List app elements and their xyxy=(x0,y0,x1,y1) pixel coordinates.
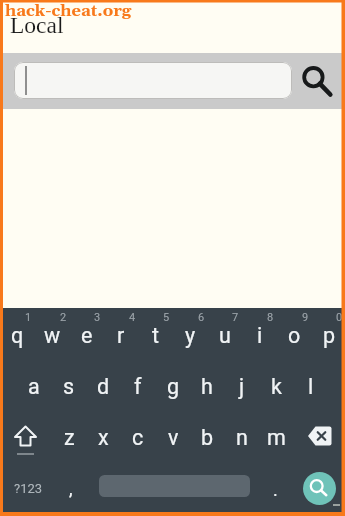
button[interactable]: q xyxy=(0,310,34,360)
staticText: 3 xyxy=(94,311,101,324)
button[interactable]: . xyxy=(258,464,292,514)
staticText: 6 xyxy=(198,311,205,324)
staticText: 4 xyxy=(129,311,136,324)
button[interactable] xyxy=(14,62,292,99)
button[interactable] xyxy=(3,411,48,461)
button[interactable] xyxy=(297,411,343,461)
staticText: 5 xyxy=(163,311,170,324)
button[interactable]: k xyxy=(259,361,293,411)
staticText: . xyxy=(273,479,278,500)
button[interactable]: t xyxy=(139,310,173,360)
staticText: f xyxy=(134,374,142,399)
staticText: ?123 xyxy=(14,481,43,496)
staticText: m xyxy=(267,425,286,450)
staticText: r xyxy=(117,323,125,348)
button[interactable]: j xyxy=(225,361,259,411)
button[interactable]: n xyxy=(225,412,259,462)
staticText: j xyxy=(239,374,245,399)
button[interactable]: l xyxy=(294,361,328,411)
staticText: , xyxy=(69,478,73,499)
button[interactable]: m xyxy=(259,412,293,462)
staticText: i xyxy=(257,323,263,348)
staticText: l xyxy=(308,374,314,399)
staticText: o xyxy=(288,323,301,348)
button[interactable] xyxy=(303,472,336,505)
staticText: 2 xyxy=(60,311,67,324)
staticText: a xyxy=(28,374,40,399)
button[interactable]: u xyxy=(208,310,242,360)
staticText: Local xyxy=(10,12,64,38)
staticText: g xyxy=(167,374,180,399)
button[interactable]: f xyxy=(121,361,155,411)
button[interactable]: v xyxy=(156,412,190,462)
staticText: d xyxy=(97,374,110,399)
button[interactable]: y xyxy=(173,310,207,360)
button[interactable]: o xyxy=(277,310,311,360)
staticText: 7 xyxy=(232,311,239,324)
button[interactable]: i xyxy=(243,310,277,360)
button[interactable]: x xyxy=(86,412,120,462)
staticText: z xyxy=(64,425,75,450)
staticText: 0 xyxy=(336,311,343,324)
button[interactable]: d xyxy=(86,361,120,411)
staticText: c xyxy=(132,425,144,450)
button[interactable]: w xyxy=(35,310,69,360)
staticText: y xyxy=(185,323,196,348)
button[interactable]: a xyxy=(17,361,51,411)
button[interactable]: p xyxy=(312,310,345,360)
button[interactable]: , xyxy=(54,463,88,513)
staticText: h xyxy=(201,374,213,399)
button[interactable]: z xyxy=(52,412,86,462)
staticText: v xyxy=(168,425,179,450)
staticText: b xyxy=(201,425,214,450)
button[interactable]: r xyxy=(104,310,138,360)
staticText: e xyxy=(81,323,93,348)
staticText: 8 xyxy=(267,311,274,324)
staticText: p xyxy=(323,323,336,348)
button[interactable]: c xyxy=(121,412,155,462)
staticText: u xyxy=(219,323,231,348)
staticText: n xyxy=(236,425,248,450)
button[interactable]: g xyxy=(156,361,190,411)
staticText: k xyxy=(271,374,282,399)
staticText: 1 xyxy=(25,311,32,324)
button[interactable]: s xyxy=(52,361,86,411)
staticText: hack-cheat.org xyxy=(5,1,132,22)
button[interactable]: ?123 xyxy=(6,463,50,513)
button[interactable] xyxy=(297,58,337,98)
staticText: x xyxy=(98,425,109,450)
button[interactable]: h xyxy=(190,361,224,411)
staticText: 9 xyxy=(302,311,309,324)
button[interactable]: b xyxy=(190,412,224,462)
staticText: q xyxy=(11,323,24,348)
staticText: s xyxy=(63,374,75,399)
staticText: t xyxy=(152,323,160,348)
staticText: w xyxy=(44,323,61,348)
button[interactable]: e xyxy=(70,310,104,360)
